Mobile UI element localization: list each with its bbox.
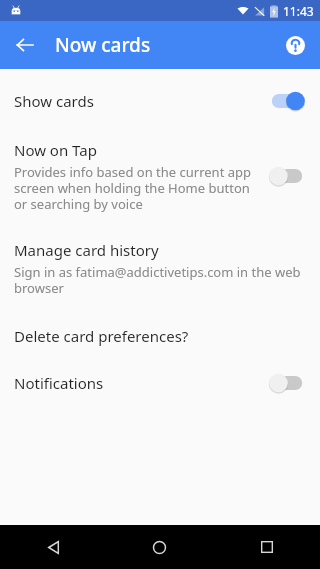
button[interactable]: Delete card preferences? <box>0 320 320 352</box>
staticText: Show cards <box>14 91 94 111</box>
button[interactable]: Help <box>277 27 313 63</box>
button[interactable]: Toggle off <box>268 370 306 396</box>
button[interactable]: Toggle on <box>268 88 306 114</box>
button[interactable]: Show cards <box>0 82 320 120</box>
button[interactable]: Now on Tap <box>0 134 320 218</box>
button[interactable]: Toggle off <box>268 163 306 189</box>
staticText: Notifications <box>14 373 104 393</box>
staticText: Now cards <box>55 32 151 58</box>
staticText: Now on Tap <box>14 140 97 160</box>
button[interactable]: Recent apps <box>213 525 320 569</box>
button[interactable]: Back <box>7 27 43 63</box>
staticText: Sign in as fatima@addictivetips.com in t… <box>14 263 306 296</box>
staticText: 11:43 <box>283 3 314 19</box>
button[interactable]: Notifications <box>0 364 320 402</box>
staticText: Manage card history <box>14 240 159 260</box>
staticText: Delete card preferences? <box>14 326 189 346</box>
button[interactable]: Back <box>0 525 106 569</box>
button[interactable]: Manage card history <box>0 234 320 302</box>
staticText: Provides info based on the current app s… <box>14 163 258 212</box>
button[interactable]: Home <box>106 525 213 569</box>
